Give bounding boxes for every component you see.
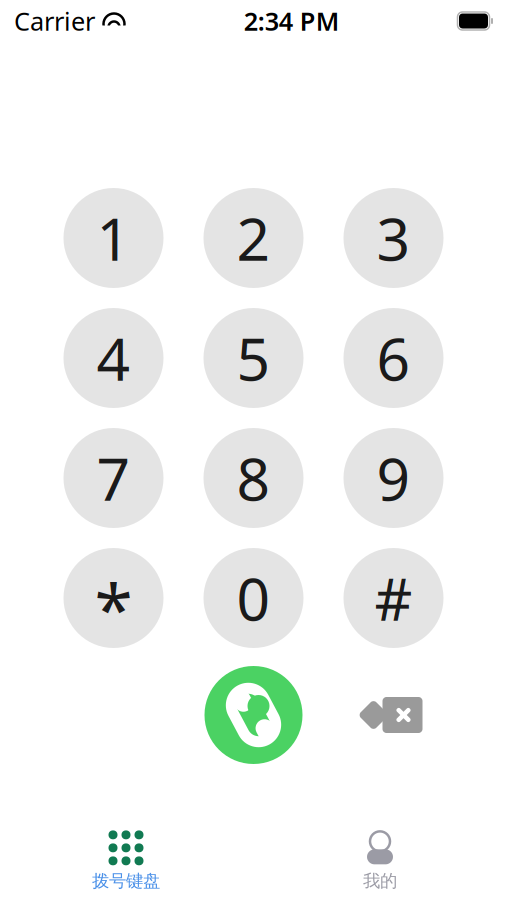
staticText: 7 (96, 439, 130, 517)
staticText: * (94, 562, 132, 654)
button[interactable]: Delete (343, 666, 443, 764)
button[interactable]: 0 (203, 548, 303, 648)
staticText: 0 (236, 559, 270, 637)
staticText: 6 (376, 319, 410, 397)
button[interactable]: 5 (203, 308, 303, 408)
button[interactable]: Call (204, 666, 302, 764)
button[interactable]: 我的 (320, 832, 440, 890)
staticText: 5 (236, 319, 270, 397)
staticText: 1 (96, 199, 130, 277)
staticText: # (374, 559, 412, 637)
button[interactable]: 1 (63, 188, 163, 288)
staticText: 我的 (363, 870, 397, 892)
staticText: 2 (236, 199, 270, 277)
staticText: 8 (236, 439, 270, 517)
button[interactable]: 8 (203, 428, 303, 528)
button[interactable]: 2 (203, 188, 303, 288)
button[interactable]: # (343, 548, 443, 648)
staticText: 9 (376, 439, 410, 517)
button[interactable]: 9 (343, 428, 443, 528)
staticText: 拨号键盘 (92, 870, 160, 892)
staticText: Carrier (14, 4, 95, 38)
button[interactable]: 7 (63, 428, 163, 528)
button[interactable]: 拨号键盘 (66, 832, 186, 890)
button[interactable]: 4 (63, 308, 163, 408)
staticText: 2:34 PM (244, 4, 340, 38)
button[interactable]: 6 (343, 308, 443, 408)
staticText: 4 (96, 319, 130, 397)
staticText: 3 (376, 199, 410, 277)
button[interactable]: 3 (343, 188, 443, 288)
button[interactable]: * (63, 548, 163, 648)
